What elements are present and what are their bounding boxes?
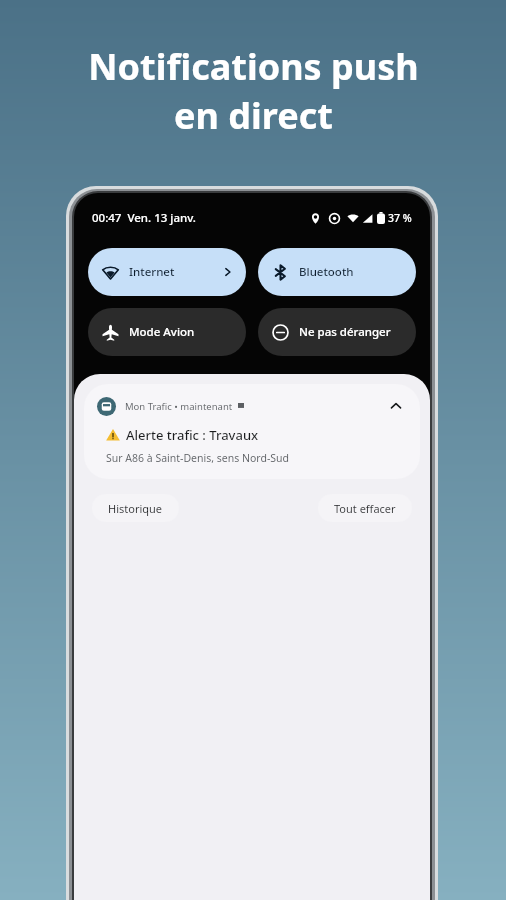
button[interactable]: Historique (92, 494, 179, 522)
staticText: Internet (129, 264, 175, 280)
staticText: en direct (174, 91, 333, 140)
staticText: Alerte trafic : Travaux (126, 426, 259, 444)
staticText: 37 % (388, 211, 412, 225)
staticText: Historique (108, 501, 163, 516)
staticText: Sur A86 à Saint-Denis, sens Nord-Sud (106, 451, 289, 465)
staticText: Mon Trafic • maintenant (125, 400, 233, 413)
button[interactable]: Tout effacer (318, 494, 412, 522)
button[interactable]: Ne pas déranger (258, 308, 416, 356)
staticText: Notifications push (88, 42, 419, 91)
button[interactable]: Internet (88, 248, 246, 296)
button[interactable]: Réduire la notification (385, 395, 407, 417)
staticText: 00:47 Ven. 13 janv. (92, 210, 196, 226)
staticText: Mode Avion (129, 324, 195, 340)
staticText: Ne pas déranger (299, 324, 391, 340)
button[interactable]: Mon Trafic • maintenant (84, 384, 420, 479)
button[interactable]: Bluetooth (258, 248, 416, 296)
staticText: Bluetooth (299, 264, 354, 280)
staticText: Tout effacer (334, 501, 396, 516)
button[interactable]: Mode Avion (88, 308, 246, 356)
